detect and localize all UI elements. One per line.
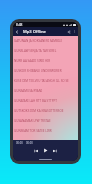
staticText: 00:00 [26,141,33,145]
button[interactable]: NURR AA SAADI SIREI HIR [13,56,78,66]
staticText: KUSE DIM TIELVEU TAI ANGH ILL SO SE [14,79,69,83]
button[interactable]: GUNSAMUSA RYANI [13,86,78,96]
staticText: 8:48 [16,23,23,27]
button[interactable]: Play [42,147,49,154]
staticText: GUSANAMAR LPW TRSTAE [14,119,51,123]
button[interactable]: GUNSKAM TOR SATEE LIRR [13,126,78,136]
staticText: GUSKOR SHIBANU UNDERWORER [14,69,62,73]
staticText: 00:00 [16,141,23,145]
staticText: NURR AA SAADI SIREI HIR [14,59,51,63]
button[interactable]: More options [72,29,77,34]
staticText: GUNSKAM TOR SATEE LIRR [14,129,52,133]
staticText: GATUNAN JA KOKSANERI SAMBILE [14,39,63,43]
button[interactable]: GUSANAMAR LPW TRSTAE [13,116,78,126]
staticText: GUNATARI LAH RTT BA STTPPT [14,99,57,103]
button[interactable]: GATUNAN JA KOKSANERI SAMBILE [13,36,78,46]
button[interactable]: Previous [33,148,39,154]
button[interactable]: GUSKOR SHIBANU UNDERWORER [13,66,78,76]
staticText: Mp3 Offline [23,29,46,35]
staticText: GUNSLAW SENJA TA TAR SIREL [14,49,57,53]
button[interactable]: GUNSLAW SENJA TA TAR SIREL [13,46,78,56]
staticText: GUTSKOKS DIM KA KRASOTTERSOE [14,109,64,113]
button[interactable]: GUTSKOKS DIM KA KRASOTTERSOE [13,106,78,116]
button[interactable]: KUSE DIM TIELVEU TAI ANGH ILL SO SE [13,76,78,86]
staticText: GUNSAMUSA RYANI [14,89,43,93]
button[interactable]: Share [66,29,72,35]
button[interactable]: Next [52,148,58,154]
button[interactable]: GUNATARI LAH RTT BA STTPPT [13,96,78,106]
button[interactable]: Back [14,29,20,35]
